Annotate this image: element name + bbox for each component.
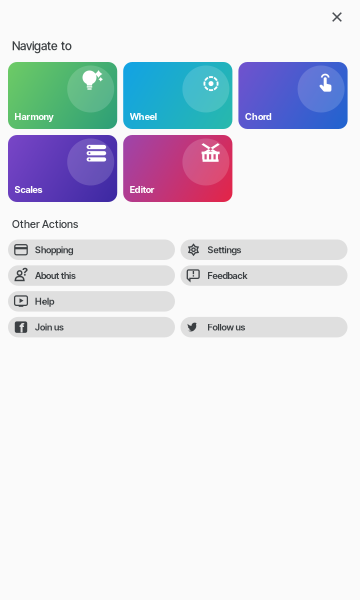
staticText: Chord	[245, 111, 272, 122]
staticText: Navigate to	[12, 39, 72, 53]
button[interactable]: Shopping	[8, 239, 175, 260]
button[interactable]: Harmony	[8, 62, 117, 129]
button[interactable]: Close	[322, 2, 352, 32]
staticText: Editor	[130, 184, 155, 195]
staticText: About this	[35, 270, 76, 281]
button[interactable]: Editor	[123, 135, 232, 202]
staticText: f	[20, 319, 25, 336]
staticText: Help	[35, 296, 54, 307]
staticText: Wheel	[130, 111, 157, 122]
button[interactable]: Scales	[8, 135, 117, 202]
button[interactable]: Follow us	[180, 317, 347, 337]
staticText: Follow us	[207, 321, 245, 333]
staticText: Other Actions	[12, 217, 78, 230]
button[interactable]: Feedback	[180, 265, 347, 286]
button[interactable]: Settings	[180, 239, 347, 260]
button[interactable]: f	[8, 317, 175, 337]
staticText: Scales	[14, 184, 42, 195]
staticText: Join us	[35, 321, 64, 333]
staticText: Settings	[207, 244, 241, 255]
staticText: Feedback	[207, 270, 247, 281]
button[interactable]: Wheel	[123, 62, 232, 129]
button[interactable]: ?	[8, 265, 175, 286]
staticText: Shopping	[35, 244, 73, 255]
staticText: ?	[22, 265, 28, 278]
button[interactable]: Chord	[238, 62, 348, 129]
button[interactable]: Help	[8, 291, 175, 312]
staticText: Harmony	[14, 111, 53, 122]
